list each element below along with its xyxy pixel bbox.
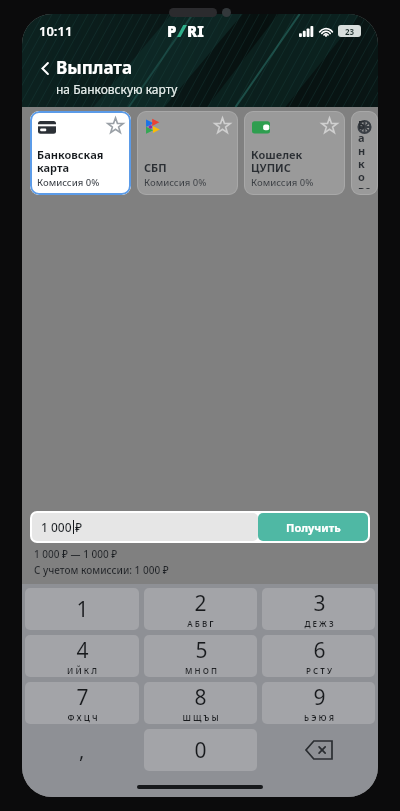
staticText: 4 (76, 636, 89, 665)
staticText: И Й К Л (67, 665, 97, 676)
button[interactable]: 1 (25, 588, 139, 630)
staticText: Комиссия 0% (144, 176, 207, 189)
button[interactable]: 7 (25, 682, 139, 724)
staticText: 9 (313, 683, 326, 712)
staticText: на Банковскую карту (56, 81, 178, 97)
button[interactable]: Кошелек ЦУПИС (244, 111, 345, 195)
staticText: М Н О П (185, 665, 217, 676)
staticText: Кошелек ЦУПИС (251, 147, 303, 175)
staticText: 3 (313, 589, 326, 618)
button[interactable]: Backspace (262, 729, 375, 771)
button[interactable]: 4 (25, 635, 139, 677)
staticText: 1 000 ₽ — 1 000 ₽ (34, 547, 118, 561)
staticText: 8 (194, 683, 207, 712)
button[interactable]: 6 (262, 635, 375, 677)
staticText: 7 (76, 683, 89, 712)
button[interactable]: 2 (144, 588, 257, 630)
button[interactable]: 9 (262, 682, 375, 724)
button[interactable]: Back (34, 57, 56, 79)
staticText: 0 (194, 736, 207, 765)
staticText: 23 (345, 26, 355, 37)
button[interactable]: Получить (258, 513, 368, 541)
staticText: Получить (286, 520, 341, 535)
button[interactable]: Банковская карта (30, 111, 131, 195)
button[interactable]: 8 (144, 682, 257, 724)
staticText: А Б В Г (187, 618, 214, 629)
staticText: ₽ (75, 519, 83, 535)
staticText: Комиссия 0% (37, 176, 100, 189)
staticText: Банковская карта (37, 147, 104, 175)
staticText: Комиссия 0% (251, 176, 314, 189)
staticText: , (79, 737, 85, 764)
staticText: 6 (313, 636, 326, 665)
staticText: Выплата (56, 56, 133, 79)
button[interactable]: 3 (262, 588, 375, 630)
staticText: 1 (76, 595, 89, 624)
staticText: 2 (194, 589, 207, 618)
button[interactable]: 0 (144, 729, 257, 771)
staticText: P (167, 21, 177, 41)
button[interactable]: 5 (144, 635, 257, 677)
staticText: СБП (144, 160, 167, 175)
staticText: RI (187, 21, 204, 41)
staticText: Ь Э Ю Я (304, 712, 334, 723)
button[interactable]: СБП (137, 111, 238, 195)
staticText: Р С Т У (306, 665, 332, 676)
button[interactable]: Банковский перевод (351, 111, 378, 195)
staticText: Ф Х Ц Ч (67, 712, 98, 723)
button[interactable]: , (25, 729, 139, 771)
staticText: 10:11 (39, 22, 73, 40)
staticText: Банковский перевод (358, 117, 371, 189)
staticText: Ш Щ Ъ Ы (182, 712, 219, 723)
staticText: 5 (195, 636, 208, 665)
staticText: 1 000 (41, 519, 72, 535)
button[interactable]: 1 000 (32, 513, 258, 541)
staticText: Д Е Ж З (304, 618, 334, 629)
staticText: С учетом комиссии: 1 000 ₽ (34, 563, 169, 577)
